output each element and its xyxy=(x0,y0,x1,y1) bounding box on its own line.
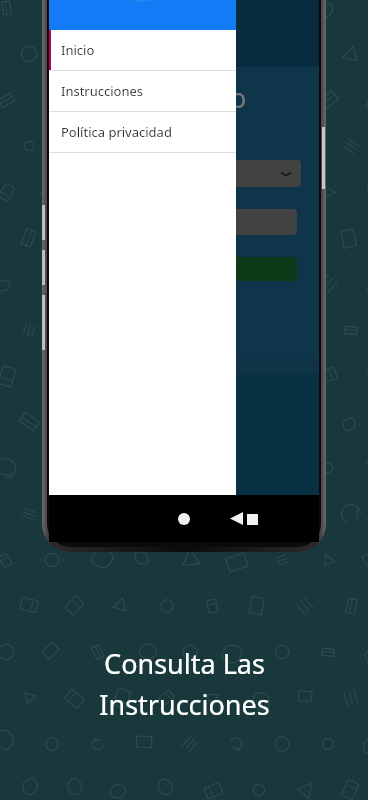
staticText: Elige el país y escribe xyxy=(89,122,208,138)
button[interactable]: Home xyxy=(167,502,201,536)
button[interactable]: Back xyxy=(101,495,368,542)
button[interactable] xyxy=(75,160,301,187)
button[interactable]: Recent apps xyxy=(235,502,269,536)
staticText: Instrucciones xyxy=(61,82,144,100)
staticText: Chat Directo xyxy=(89,79,247,116)
staticText: Política privacidad xyxy=(61,123,172,141)
button[interactable]: Ej: 5512345678 mensajes xyxy=(75,209,297,235)
button[interactable]: Instrucciones xyxy=(49,71,236,111)
staticText: Consulta Las xyxy=(104,645,265,682)
staticText: Inicio xyxy=(61,41,95,59)
button[interactable] xyxy=(75,257,297,281)
button[interactable]: Política privacidad xyxy=(49,112,236,152)
staticText: Instrucciones xyxy=(99,686,270,723)
button[interactable]: Inicio xyxy=(49,30,236,70)
